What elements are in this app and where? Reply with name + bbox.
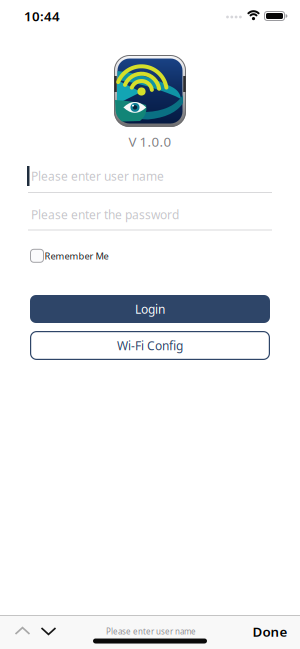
staticText: Remember Me xyxy=(44,250,108,262)
staticText: Login xyxy=(135,301,165,317)
staticText: Done xyxy=(252,623,287,640)
staticText: Please enter user name xyxy=(106,626,196,637)
button[interactable]: Login xyxy=(30,295,270,323)
staticText: 10:44 xyxy=(24,7,60,25)
button[interactable]: Please enter user name xyxy=(28,160,272,193)
staticText: Wi-Fi Config xyxy=(117,337,183,353)
staticText: Please enter user name xyxy=(31,168,164,184)
button[interactable]: Wi-Fi Config xyxy=(30,331,270,360)
button[interactable]: Remember Me xyxy=(30,249,110,263)
staticText: Please enter the password xyxy=(31,206,179,222)
staticText: V 1.0.0 xyxy=(128,133,171,150)
button[interactable] xyxy=(14,627,30,635)
button[interactable]: Done xyxy=(248,621,292,641)
button[interactable]: Please enter the password xyxy=(28,200,272,230)
button[interactable] xyxy=(40,627,56,635)
